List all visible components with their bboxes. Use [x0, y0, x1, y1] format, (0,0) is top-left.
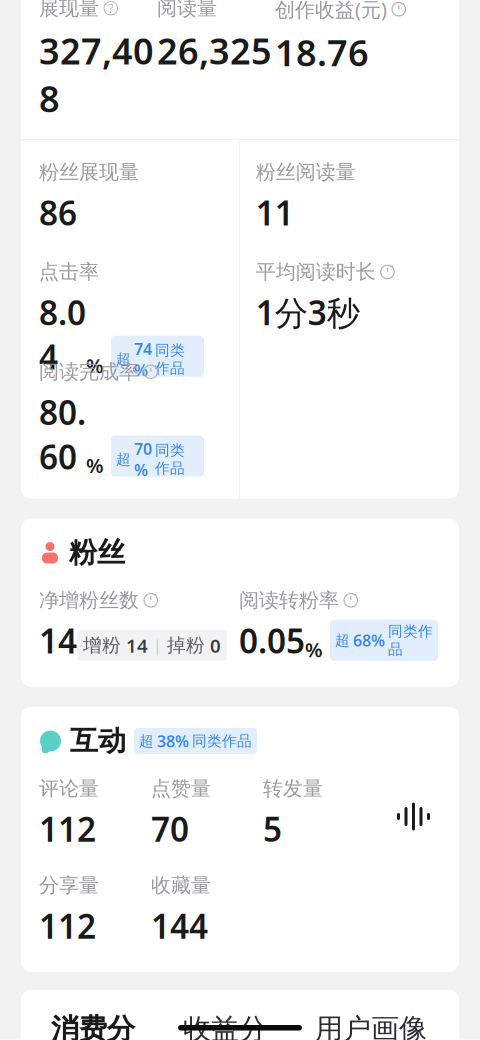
button[interactable]: 收益分析 [177, 1012, 273, 1040]
staticText: 点击率 [39, 260, 99, 284]
staticText: 1分3秒 [256, 290, 360, 334]
staticText: 70% [134, 438, 152, 480]
staticText: 超 [116, 350, 131, 368]
staticText: ? [108, 0, 113, 16]
staticText: 18.76 [275, 28, 369, 76]
staticText: 创作收益(元) [275, 0, 387, 22]
staticText: 收藏量 [151, 873, 211, 898]
staticText: 平均阅读时长 [256, 260, 376, 284]
staticText: 327,408 [39, 26, 154, 122]
staticText: % [305, 636, 323, 663]
staticText: 5 [263, 807, 282, 851]
staticText: % [86, 452, 104, 479]
staticText: 70 [151, 807, 189, 851]
staticText: 收益分析 [183, 1012, 267, 1040]
staticText: 86 [39, 190, 77, 235]
staticText: 38% [157, 730, 189, 752]
staticText: 消费分析 [51, 1012, 135, 1040]
staticText: 用户画像 [315, 1012, 427, 1040]
button[interactable]: 消费分析 [45, 1012, 141, 1040]
staticText: 144 [151, 904, 208, 948]
staticText: 互动 [70, 724, 126, 758]
staticText: 74% [134, 338, 152, 381]
staticText: % [86, 352, 104, 379]
staticText: 转发量 [263, 776, 323, 801]
staticText: 68% [353, 630, 385, 651]
staticText: 同类作品 [155, 441, 185, 477]
staticText: 增粉 [83, 634, 121, 657]
staticText: 展现量 [39, 0, 99, 20]
staticText: 11 [256, 190, 294, 235]
staticText: 14 [39, 618, 77, 663]
staticText: 净增粉丝数 [39, 588, 139, 613]
staticText: 超 [335, 631, 350, 649]
staticText: | [153, 635, 162, 656]
staticText: 阅读完成率 [39, 359, 139, 384]
staticText: 粉丝展现量 [39, 160, 139, 184]
staticText: 分享量 [39, 873, 99, 898]
button[interactable]: 用户画像 [309, 1012, 433, 1040]
staticText: 14 [126, 633, 148, 658]
staticText: 0.05 [239, 618, 305, 663]
staticText: 阅读量 [157, 0, 217, 20]
staticText: 粉丝 [69, 536, 125, 570]
staticText: 80.60 [39, 390, 86, 478]
staticText: 点赞量 [151, 776, 211, 801]
staticText: 评论量 [39, 776, 99, 801]
staticText: 0 [210, 633, 221, 658]
staticText: 26,325 [157, 26, 272, 74]
staticText: 阅读转粉率 [239, 588, 339, 613]
staticText: 粉丝阅读量 [256, 160, 356, 184]
staticText: 同类作品 [155, 341, 185, 377]
staticText: 同类作品 [388, 622, 433, 658]
staticText: 8.04 [39, 290, 86, 379]
staticText: 掉粉 [167, 634, 205, 657]
staticText: 超 [139, 732, 154, 750]
staticText: 112 [39, 904, 96, 948]
staticText: 超 [116, 450, 131, 468]
staticText: 112 [39, 807, 96, 851]
button[interactable]: Voice assistant [369, 776, 458, 857]
staticText: 同类作品 [192, 732, 252, 750]
